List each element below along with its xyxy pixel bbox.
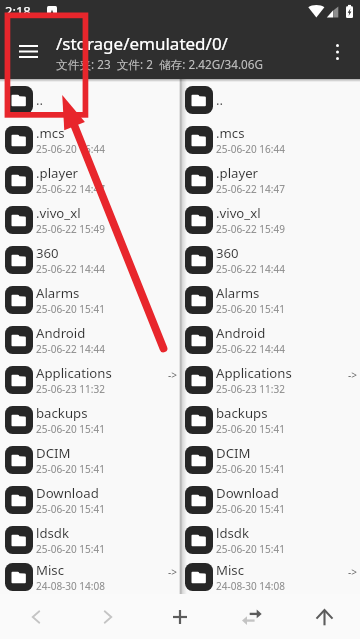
staticText: Alarms [216, 284, 260, 302]
staticText: 25-06-20 16:44 [216, 142, 285, 156]
staticText: 25-06-22 15:49 [216, 222, 285, 236]
button[interactable]: Navigation menu [4, 30, 52, 73]
button[interactable]: .mcs [180, 120, 360, 160]
staticText: 25-06-20 15:41 [216, 422, 285, 436]
button[interactable]: Download [180, 480, 360, 520]
staticText: Alarms [36, 284, 80, 302]
button[interactable]: DCIM [180, 440, 360, 480]
staticText: 25-06-22 14:44 [36, 342, 105, 356]
staticText: Applications [36, 364, 112, 382]
staticText: 25-06-22 14:44 [36, 262, 105, 276]
button[interactable]: .vivo_xl [180, 200, 360, 240]
staticText: DCIM [216, 444, 251, 462]
staticText: 24-08-30 14:08 [36, 579, 105, 593]
button[interactable]: Up one level [288, 594, 360, 639]
staticText: Misc [216, 561, 245, 579]
staticText: 25-06-22 14:47 [216, 182, 285, 196]
staticText: 360 [216, 244, 239, 262]
button[interactable]: Back [0, 594, 72, 639]
staticText: .mcs [216, 124, 245, 142]
staticText: 25-06-23 11:32 [216, 382, 285, 396]
button[interactable]: Forward [72, 594, 144, 639]
staticText: /storage/emulated/0/ [56, 32, 228, 55]
button[interactable]: .. [180, 80, 360, 120]
staticText: Download [36, 484, 99, 502]
button[interactable]: Alarms [0, 280, 180, 320]
staticText: -> [348, 565, 357, 579]
staticText: -> [168, 565, 177, 579]
staticText: 24-08-30 14:08 [216, 579, 285, 593]
staticText: 25-06-22 14:44 [216, 342, 285, 356]
button[interactable]: .vivo_xl [0, 200, 180, 240]
staticText: 25-06-20 16:44 [36, 142, 105, 156]
staticText: 25-06-20 15:41 [36, 502, 105, 516]
button[interactable]: Misc [0, 560, 180, 594]
staticText: 25-06-20 15:41 [36, 542, 105, 556]
staticText: 25-06-22 14:47 [36, 182, 105, 196]
staticText: .player [36, 164, 79, 182]
button[interactable]: .. [0, 80, 180, 120]
button[interactable]: Alarms [180, 280, 360, 320]
button[interactable]: Android [180, 320, 360, 360]
button[interactable]: ldsdk [0, 520, 180, 560]
button[interactable]: Download [0, 480, 180, 520]
button[interactable]: backups [180, 400, 360, 440]
staticText: 25-06-20 15:41 [216, 462, 285, 476]
staticText: .. [216, 91, 224, 109]
staticText: Download [216, 484, 279, 502]
staticText: 25-06-22 15:49 [36, 222, 105, 236]
staticText: Android [36, 324, 86, 342]
staticText: 25-06-20 15:41 [36, 302, 105, 316]
staticText: 25-06-22 14:44 [216, 262, 285, 276]
button[interactable]: More options [318, 30, 356, 73]
button[interactable]: Swap panes [216, 594, 288, 639]
staticText: .vivo_xl [216, 204, 261, 222]
staticText: -> [348, 368, 357, 382]
button[interactable]: DCIM [0, 440, 180, 480]
staticText: 25-06-20 15:41 [36, 462, 105, 476]
staticText: .vivo_xl [36, 204, 81, 222]
button[interactable]: backups [0, 400, 180, 440]
staticText: ldsdk [36, 524, 69, 542]
button[interactable]: New folder [144, 594, 216, 639]
staticText: ldsdk [216, 524, 249, 542]
staticText: 25-06-20 15:41 [216, 502, 285, 516]
button[interactable]: 360 [0, 240, 180, 280]
button[interactable]: ldsdk [180, 520, 360, 560]
staticText: Applications [216, 364, 292, 382]
staticText: 360 [36, 244, 59, 262]
staticText: 25-06-20 15:41 [216, 302, 285, 316]
staticText: .player [216, 164, 259, 182]
staticText: 文件夹: 23 文件: 2 储存: 2.42G/34.06G [56, 56, 263, 72]
staticText: 25-06-20 15:41 [36, 422, 105, 436]
button[interactable]: Applications [180, 360, 360, 400]
button[interactable]: Applications [0, 360, 180, 400]
staticText: DCIM [36, 444, 71, 462]
button[interactable]: .player [180, 160, 360, 200]
staticText: Android [216, 324, 266, 342]
staticText: backups [216, 404, 268, 422]
staticText: Misc [36, 561, 65, 579]
staticText: 2:18 [5, 2, 31, 20]
staticText: -> [168, 368, 177, 382]
button[interactable]: Android [0, 320, 180, 360]
staticText: 25-06-20 15:41 [216, 542, 285, 556]
staticText: 25-06-23 11:32 [36, 382, 105, 396]
button[interactable]: 360 [180, 240, 360, 280]
staticText: .. [36, 91, 44, 109]
staticText: backups [36, 404, 88, 422]
staticText: .mcs [36, 124, 65, 142]
button[interactable]: .mcs [0, 120, 180, 160]
button[interactable]: .player [0, 160, 180, 200]
button[interactable]: Misc [180, 560, 360, 594]
